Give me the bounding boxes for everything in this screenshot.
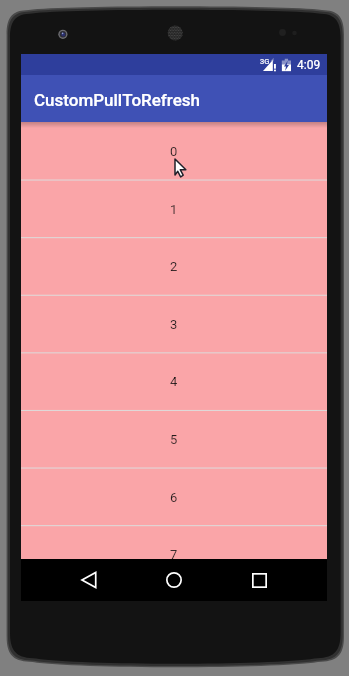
button[interactable]: 2 (21, 237, 327, 295)
staticText: 5 (170, 432, 178, 447)
button[interactable]: 1 (21, 180, 327, 238)
button[interactable]: 3 (21, 295, 327, 353)
button[interactable]: Back (69, 560, 109, 600)
staticText: 2 (170, 259, 178, 274)
button[interactable]: 8 (21, 583, 327, 601)
staticText: 4 (170, 374, 178, 389)
button[interactable]: 0 (21, 122, 327, 180)
button[interactable]: 4 (21, 352, 327, 410)
button[interactable]: Home (154, 560, 194, 600)
staticText: 3 (170, 317, 178, 332)
staticText: 6 (170, 490, 178, 505)
staticText: CustomPullToRefresh (34, 90, 201, 110)
button[interactable]: Recent apps (239, 560, 279, 600)
button[interactable]: 7 (21, 525, 327, 583)
staticText: 0 (170, 144, 178, 159)
staticText: 3G (260, 57, 270, 66)
button[interactable]: CustomPullToRefresh (21, 54, 327, 122)
staticText: 7 (170, 547, 178, 562)
staticText: 1 (170, 202, 178, 217)
button[interactable]: 6 (21, 468, 327, 526)
button[interactable]: 5 (21, 410, 327, 468)
staticText: 4:09 (297, 58, 321, 72)
